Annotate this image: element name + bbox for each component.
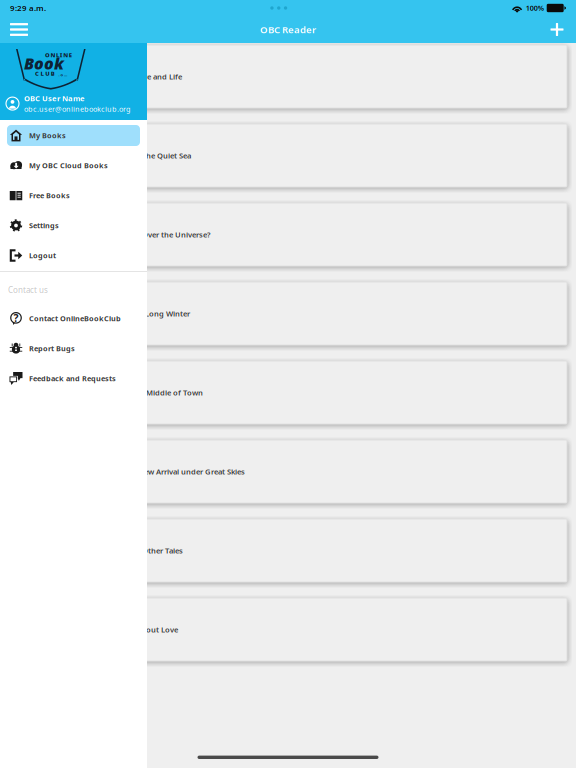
staticText: Letters from the Quiet Hours of a Long W… xyxy=(21,308,190,319)
staticText: Tides of the Northern Reach and Other Ta… xyxy=(21,545,183,556)
staticText: 9:29 a.m. xyxy=(10,3,46,13)
staticText: OBC User Name xyxy=(24,93,85,104)
staticText: Report Bugs xyxy=(29,343,75,353)
staticText: My Books xyxy=(29,130,66,140)
staticText: Echoes of a Forgotten Harbor by the Quie… xyxy=(21,150,191,161)
button[interactable]: Menu xyxy=(0,16,38,43)
staticText: The Collected Poems about Jo, Love and L… xyxy=(21,71,182,82)
button[interactable]: Free Books xyxy=(7,185,140,206)
staticText: My Dear Grandmother Told Me About Love xyxy=(21,624,178,635)
staticText: Feedback and Requests xyxy=(29,373,116,383)
button[interactable]: Feedback and Requests xyxy=(7,368,140,389)
staticText: obc.user@onlinebookclub.org xyxy=(24,104,131,114)
button[interactable]: Add xyxy=(538,16,576,43)
staticText: OBC Reader xyxy=(260,23,316,36)
button[interactable]: My OBC Cloud Books xyxy=(7,155,140,176)
staticText: Contact us xyxy=(8,285,48,295)
staticText: CLUB xyxy=(35,69,55,77)
button[interactable]: My Dear Grandmother Told Me About Love xyxy=(9,598,567,661)
staticText: .org xyxy=(59,72,69,77)
button[interactable]: My Books xyxy=(7,125,140,146)
staticText: A Quiet Winter Tale of a Shining New Arr… xyxy=(21,466,245,477)
staticText: Contact OnlineBookClub xyxy=(29,313,121,323)
button[interactable]: Who Was the One Who Has Built Over the U… xyxy=(9,203,567,266)
staticText: Logout xyxy=(29,250,56,260)
button[interactable]: Echoes of a Forgotten Harbor by the Quie… xyxy=(9,124,567,187)
staticText: ? xyxy=(13,311,18,325)
button[interactable]: A Garden of Iron and Glass in the Middle… xyxy=(9,361,567,424)
button[interactable]: ? xyxy=(7,308,140,329)
button[interactable]: The Collected Poems about Jo, Love and L… xyxy=(9,45,567,108)
staticText: Free Books xyxy=(29,190,70,200)
button[interactable]: Logout xyxy=(7,245,140,266)
staticText: ONLINE xyxy=(45,51,72,59)
button[interactable]: Letters from the Quiet Hours of a Long W… xyxy=(9,282,567,345)
button[interactable]: Settings xyxy=(7,215,140,236)
staticText: A Garden of Iron and Glass in the Middle… xyxy=(21,387,203,398)
staticText: Settings xyxy=(29,220,59,230)
staticText: Who Was the One Who Has Built Over the U… xyxy=(21,229,211,240)
button[interactable]: Tides of the Northern Reach and Other Ta… xyxy=(9,519,567,582)
button[interactable]: Report Bugs xyxy=(7,338,140,359)
button[interactable]: A Quiet Winter Tale of a Shining New Arr… xyxy=(9,440,567,503)
staticText: 100% xyxy=(526,3,544,13)
staticText: Book xyxy=(24,52,64,74)
staticText: My OBC Cloud Books xyxy=(29,160,108,170)
